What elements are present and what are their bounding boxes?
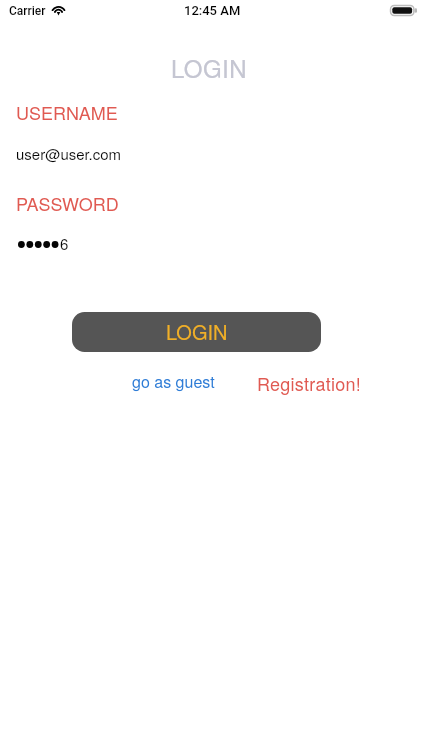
staticText: LOGIN (166, 317, 228, 346)
other: Wi-Fi signal (51, 3, 66, 14)
button[interactable]: USERNAME (0, 96, 422, 166)
staticText: 6 (60, 233, 69, 254)
button[interactable]: go as guest (122, 362, 226, 396)
staticText: Carrier (9, 4, 46, 18)
staticText: USERNAME (16, 99, 118, 125)
button[interactable]: Registration! (247, 362, 369, 396)
other: Battery full (390, 5, 417, 16)
staticText: user@user.com (16, 143, 122, 164)
staticText: Registration! (257, 370, 361, 396)
button[interactable]: PASSWORD (0, 187, 422, 257)
staticText: PASSWORD (16, 190, 119, 216)
staticText: 12:45 AM (184, 3, 241, 18)
staticText: go as guest (132, 370, 215, 393)
button[interactable]: LOGIN (72, 312, 321, 352)
staticText: LOGIN (171, 50, 247, 84)
